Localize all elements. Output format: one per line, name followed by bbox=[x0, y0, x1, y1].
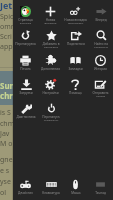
staticText: Scri bbox=[0, 32, 12, 42]
button[interactable]: Настройки bbox=[38, 73, 63, 97]
button[interactable]: Печать bbox=[13, 49, 38, 73]
staticText: Перезапуск страницы bbox=[42, 115, 60, 121]
staticText: Перезагрузка bbox=[15, 42, 36, 46]
button[interactable]: История bbox=[88, 49, 113, 73]
staticText: Jav bbox=[0, 129, 10, 139]
staticText: Мышь bbox=[71, 191, 81, 195]
button[interactable]: Перезапуск страницы bbox=[38, 97, 63, 121]
staticText: Добавить в закладки bbox=[42, 42, 60, 48]
button[interactable]: Новая вкладка инкогнито bbox=[63, 0, 88, 24]
staticText: Джойстик bbox=[18, 191, 33, 195]
staticText: chr bbox=[0, 90, 13, 101]
staticText: e s bbox=[0, 166, 10, 176]
button[interactable]: Диагностика bbox=[13, 97, 38, 121]
staticText: app bbox=[0, 42, 13, 52]
staticText: Клавиатура bbox=[42, 191, 60, 195]
staticText: Новая вкладка bbox=[44, 18, 57, 24]
staticText: Загрузки bbox=[19, 91, 33, 95]
staticText: Печать bbox=[20, 67, 31, 71]
staticText: Страница запуска bbox=[18, 18, 33, 24]
staticText: Отправить отзыв bbox=[92, 91, 109, 97]
staticText: Дополнения bbox=[41, 67, 60, 71]
button[interactable]: Перезагрузка bbox=[13, 24, 38, 48]
staticText: gne bbox=[0, 155, 13, 165]
button[interactable]: Клавиатура bbox=[38, 173, 63, 200]
button[interactable]: Загрузки bbox=[13, 73, 38, 97]
staticText: Поделиться bbox=[67, 42, 85, 46]
staticText: Новая вкладка инкогнито bbox=[64, 18, 87, 24]
staticText: chm bbox=[0, 119, 15, 129]
button[interactable]: Поделиться bbox=[63, 24, 88, 48]
staticText: Sun bbox=[0, 80, 15, 91]
button[interactable]: Мышь bbox=[63, 173, 88, 200]
staticText: Вперед bbox=[95, 18, 107, 22]
staticText: Закладки bbox=[68, 67, 83, 71]
staticText: is S bbox=[0, 108, 11, 118]
staticText: ol bbox=[0, 188, 7, 198]
button[interactable]: Тачпад bbox=[88, 173, 113, 200]
button[interactable]: Вперед bbox=[88, 0, 113, 24]
button[interactable]: Дополнения bbox=[38, 49, 63, 73]
staticText: Spid bbox=[0, 12, 15, 22]
staticText: yse bbox=[0, 177, 11, 187]
staticText: Тачпад bbox=[95, 191, 106, 195]
staticText: M on bbox=[0, 139, 17, 149]
staticText: omn bbox=[0, 22, 16, 32]
staticText: Настройки bbox=[42, 91, 59, 95]
staticText: Помощь bbox=[69, 91, 82, 95]
staticText: Jet bbox=[0, 0, 13, 11]
button[interactable]: Отправить отзыв bbox=[88, 73, 113, 97]
button[interactable]: Помощь bbox=[63, 73, 88, 97]
staticText: Найти на странице bbox=[94, 42, 108, 48]
staticText: История bbox=[94, 67, 107, 71]
button[interactable]: Новая вкладка bbox=[38, 0, 63, 24]
button[interactable]: Страница запуска bbox=[13, 0, 38, 24]
staticText: Диагностика bbox=[16, 115, 36, 119]
button[interactable]: Джойстик bbox=[13, 173, 38, 200]
button[interactable]: Добавить в закладки bbox=[38, 24, 63, 48]
button[interactable]: Найти на странице bbox=[88, 24, 113, 48]
button[interactable]: Закладки bbox=[63, 49, 88, 73]
